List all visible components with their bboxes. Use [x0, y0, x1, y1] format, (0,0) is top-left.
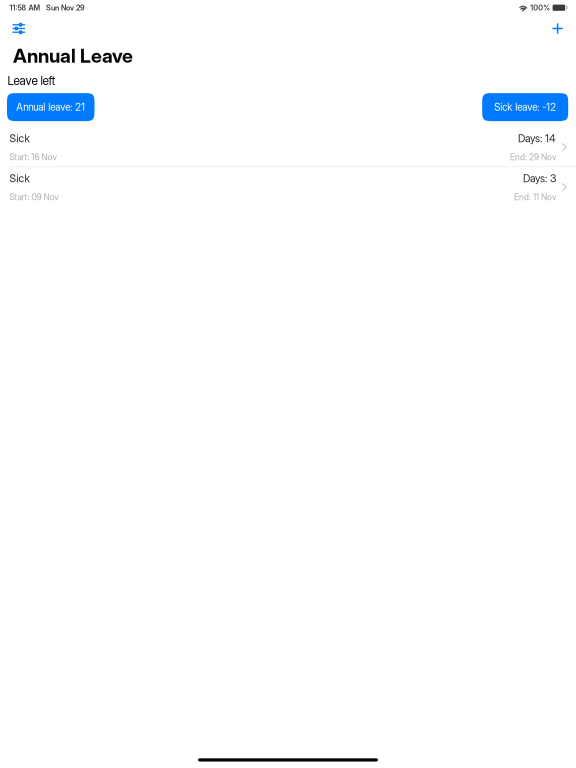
staticText: Days: 14 — [518, 132, 556, 145]
staticText: Annual Leave — [13, 44, 133, 67]
staticText: Sick — [9, 172, 29, 185]
button[interactable]: Sick leave: -12 — [482, 93, 568, 121]
staticText: 100% — [530, 3, 550, 12]
button[interactable]: Filter — [6, 17, 31, 39]
button[interactable]: Add leave — [546, 17, 569, 40]
staticText: Sick leave: -12 — [494, 101, 556, 113]
button[interactable]: Sick — [0, 167, 576, 207]
staticText: End: 29 Nov — [510, 152, 556, 162]
staticText: Annual leave: 21 — [16, 101, 85, 113]
staticText: Start: 09 Nov — [9, 192, 58, 202]
staticText: Days: 3 — [523, 172, 556, 185]
staticText: Sick — [9, 132, 29, 145]
staticText: End: 11 Nov — [514, 192, 556, 202]
staticText: 11:58 AM — [9, 3, 40, 12]
staticText: Leave left — [7, 73, 55, 88]
button[interactable]: Sick — [0, 128, 576, 167]
button[interactable]: Annual leave: 21 — [7, 93, 94, 121]
staticText: Start: 16 Nov — [9, 152, 56, 162]
staticText: Sun Nov 29 — [46, 3, 85, 12]
